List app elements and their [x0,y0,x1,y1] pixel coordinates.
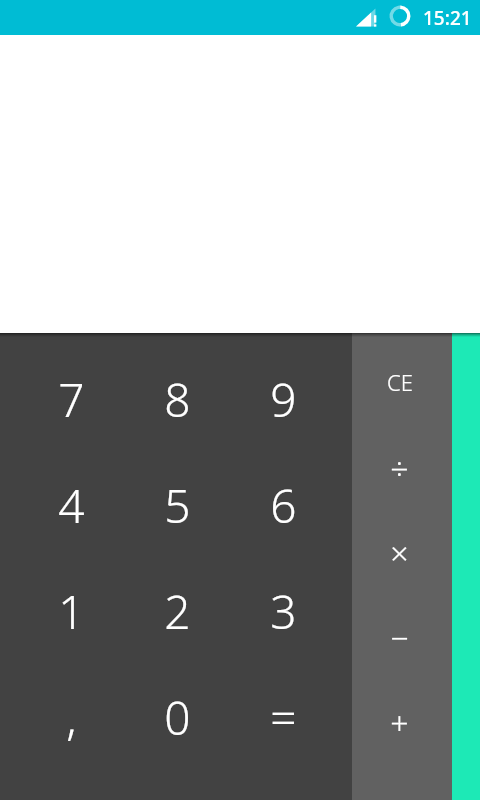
button[interactable]: 5 [124,452,230,558]
button[interactable]: 4 [18,452,124,558]
button[interactable]: 0 [124,664,230,770]
button[interactable]: 7 [18,346,124,452]
staticText: 3 [270,580,297,643]
staticText: 4 [58,474,85,537]
other: Syncing [389,5,411,27]
staticText: 5 [164,474,191,537]
staticText: , [66,686,77,749]
staticText: 6 [270,474,297,537]
button[interactable]: 6 [230,452,336,558]
staticText: 0 [164,686,191,749]
button[interactable]: Divide [352,425,447,510]
staticText: ÷ [390,446,409,490]
button[interactable]: Add [352,680,447,765]
staticText: 8 [164,368,191,431]
staticText: 2 [164,580,191,643]
staticText: − [390,616,409,660]
button[interactable]: More options [452,333,480,800]
button[interactable]: 8 [124,346,230,452]
staticText: CE [387,367,413,397]
button[interactable]: Subtract [352,595,447,680]
staticText: 1 [58,580,85,643]
button[interactable]: Multiply [352,510,447,595]
button[interactable]: 9 [230,346,336,452]
button[interactable]: = [230,664,336,770]
button[interactable]: 2 [124,558,230,664]
button[interactable]: 3 [230,558,336,664]
button[interactable]: Clear entry [352,339,447,425]
staticText: 15:21 [423,5,472,31]
staticText: × [390,531,409,575]
staticText: + [390,701,409,745]
button[interactable]: 1 [18,558,124,664]
button[interactable]: , [18,664,124,770]
other: Mobile signal, no service [356,8,377,27]
staticText: 9 [270,368,297,431]
staticText: 7 [58,368,85,431]
staticText: = [270,686,297,749]
